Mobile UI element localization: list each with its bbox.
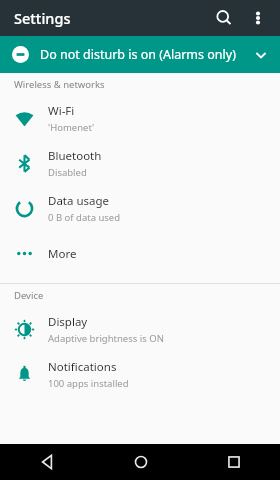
staticText: Device: [14, 289, 44, 302]
button[interactable]: Recent apps: [187, 444, 280, 480]
staticText: Adaptive brightness is ON: [48, 332, 164, 345]
button[interactable]: Back: [0, 444, 94, 480]
button[interactable]: Notifications: [0, 352, 280, 397]
button[interactable]: Do not disturb is on (Alarms only): [0, 36, 280, 73]
button[interactable]: Search: [208, 2, 240, 34]
staticText: 'Homenet': [48, 121, 95, 134]
button[interactable]: Wi-Fi: [0, 96, 280, 141]
staticText: Bluetooth: [48, 148, 102, 164]
staticText: Data usage: [48, 193, 110, 209]
staticText: Disabled: [48, 166, 87, 179]
staticText: Display: [48, 314, 88, 330]
button[interactable]: Bluetooth: [0, 141, 280, 186]
staticText: More: [48, 246, 77, 262]
staticText: Settings: [14, 8, 71, 28]
button[interactable]: More: [0, 231, 280, 276]
button[interactable]: Display: [0, 307, 280, 352]
staticText: 100 apps installed: [48, 377, 129, 390]
staticText: Do not disturb is on (Alarms only): [40, 46, 236, 63]
staticText: Wi-Fi: [48, 103, 75, 119]
button[interactable]: Data usage: [0, 186, 280, 231]
staticText: Wireless & networks: [14, 78, 105, 91]
staticText: Notifications: [48, 359, 117, 375]
button[interactable]: Home: [94, 444, 187, 480]
staticText: 0 B of data used: [48, 211, 121, 224]
button[interactable]: More options: [242, 2, 274, 34]
